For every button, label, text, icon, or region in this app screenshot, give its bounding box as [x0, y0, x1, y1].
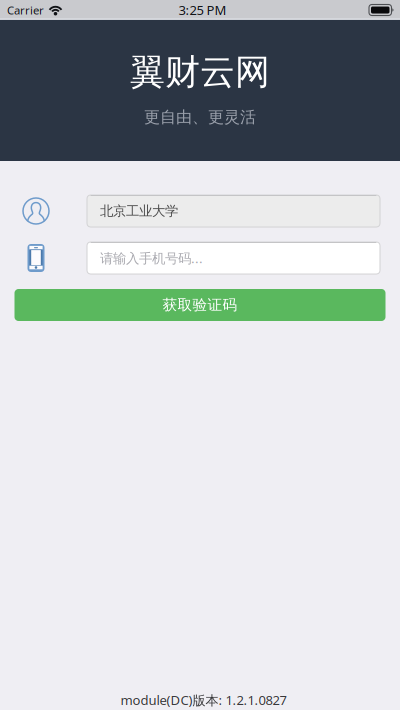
- staticText: 翼财云网: [130, 50, 270, 94]
- staticText: 请输入手机号码...: [100, 249, 203, 267]
- staticText: module(DC)版本: 1.2.1.0827: [120, 691, 286, 709]
- staticText: 北京工业大学: [100, 203, 178, 219]
- staticText: 3:25 PM: [178, 1, 226, 19]
- staticText: 更自由、更灵活: [144, 107, 256, 127]
- button[interactable]: 获取验证码: [14, 289, 385, 321]
- staticText: Carrier: [7, 2, 44, 18]
- staticText: 获取验证码: [162, 296, 237, 314]
